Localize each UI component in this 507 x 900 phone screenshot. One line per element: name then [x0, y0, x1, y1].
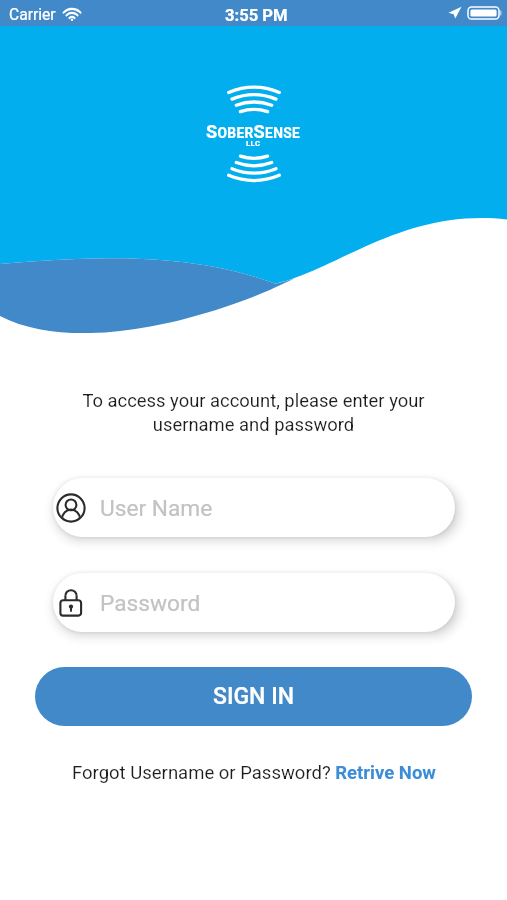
staticText: LLC — [246, 139, 261, 148]
staticText: 3:55 PM — [225, 6, 288, 25]
staticText: SIGN IN — [213, 683, 294, 710]
other: User name — [57, 494, 85, 522]
button[interactable]: SIGN IN — [35, 667, 472, 726]
button[interactable]: User name — [53, 478, 455, 537]
staticText: To access your account, please enter you… — [82, 390, 425, 435]
staticText: SOBERSENSE — [206, 121, 301, 142]
staticText: Forgot Username or Password? Retrive Now — [72, 762, 436, 784]
other: Password — [57, 589, 85, 617]
button[interactable]: Forgot Username or Password? Retrive Now — [72, 762, 436, 784]
staticText: Password — [100, 590, 201, 617]
button[interactable]: Password — [53, 573, 455, 632]
staticText: Carrier — [9, 6, 56, 24]
staticText: User Name — [100, 495, 213, 522]
